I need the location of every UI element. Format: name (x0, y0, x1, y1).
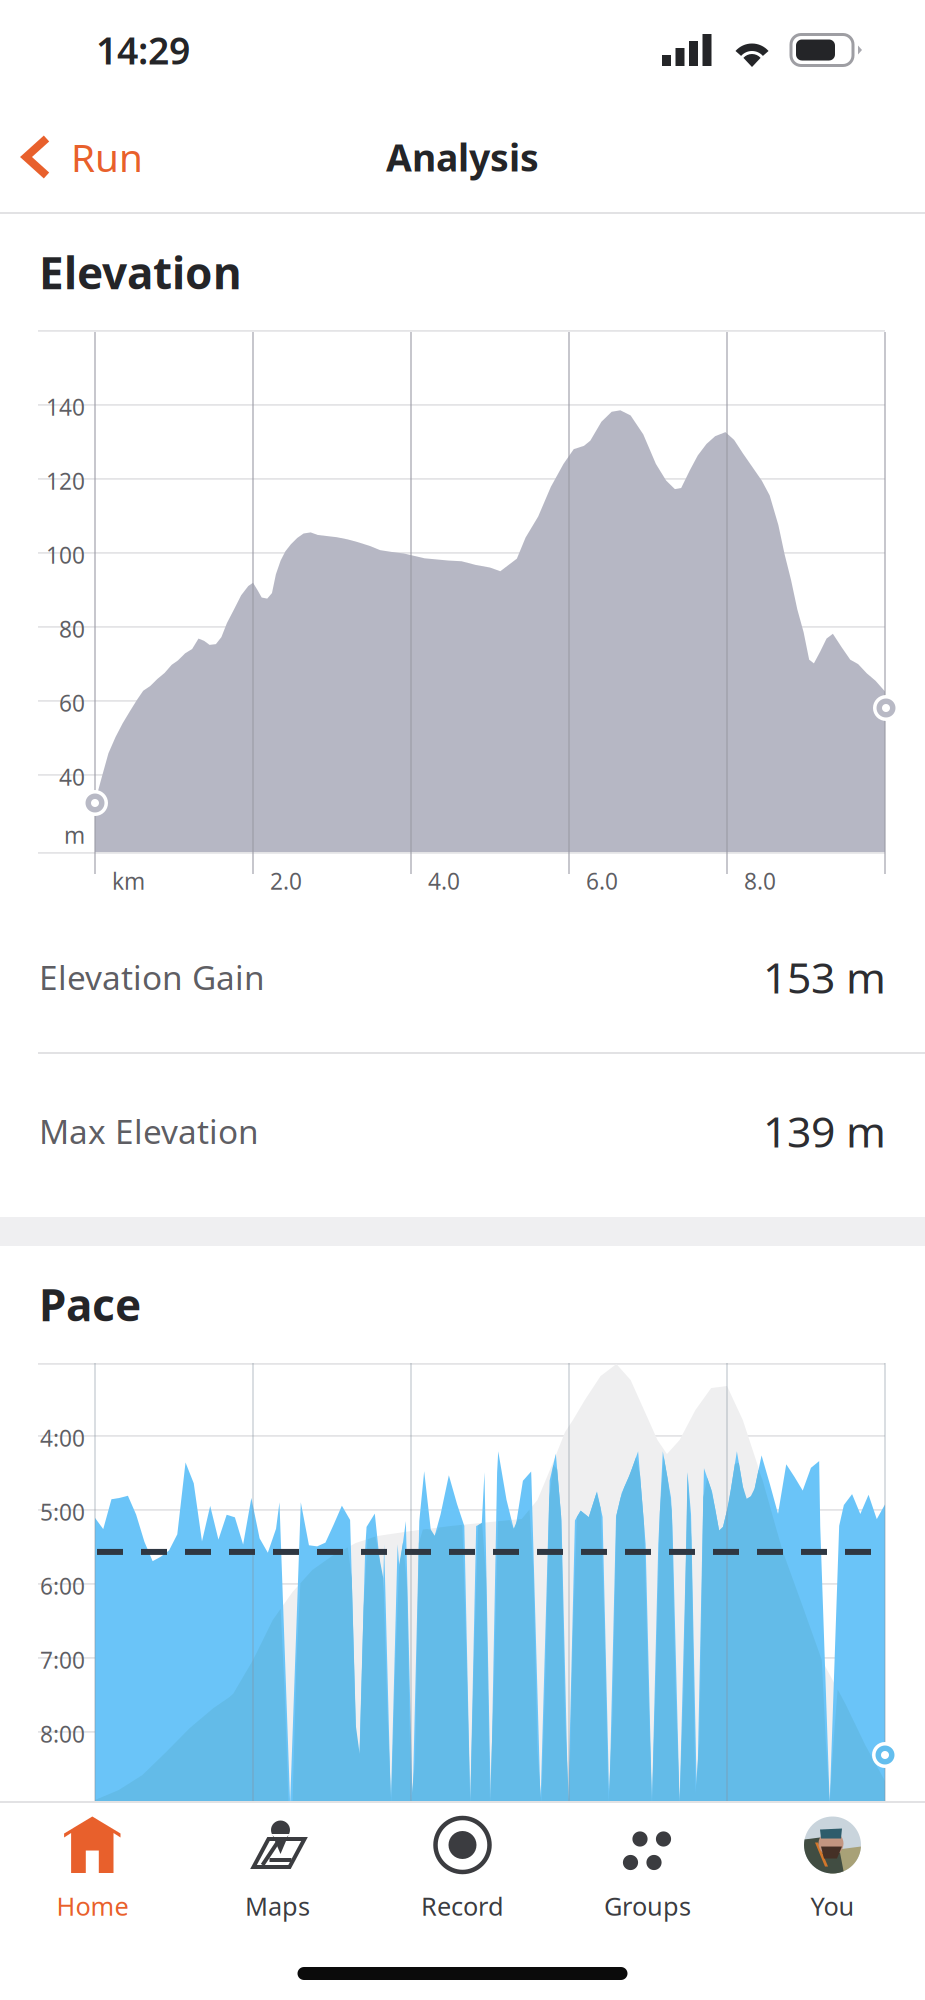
staticText: 6:00 (40, 1571, 85, 1601)
staticText: 8.0 (744, 866, 776, 896)
staticText: 153 m (763, 949, 886, 1005)
staticText: Max Elevation (39, 1109, 259, 1153)
button[interactable]: Elevation Gain (0, 913, 925, 1041)
staticText: Pace (39, 1275, 141, 1333)
staticText: Groups (604, 1889, 691, 1923)
staticText: Elevation Gain (39, 955, 265, 999)
staticText: 7:00 (40, 1645, 85, 1675)
staticText: Record (421, 1889, 504, 1923)
staticText: Run (71, 131, 143, 183)
button[interactable]: Max Elevation (0, 1067, 925, 1195)
staticText: 14:29 (96, 25, 190, 75)
staticText: 139 m (763, 1103, 886, 1159)
staticText: 120 (46, 466, 85, 496)
staticText: 100 (46, 540, 85, 570)
staticText: Home (56, 1889, 128, 1923)
staticText: m (64, 820, 85, 850)
button[interactable]: Run (0, 115, 163, 199)
staticText: 8:00 (40, 1719, 85, 1749)
staticText: 4:00 (40, 1423, 85, 1453)
staticText: Elevation (39, 243, 242, 301)
button[interactable]: Maps (185, 1816, 370, 1923)
staticText: 80 (59, 614, 85, 644)
staticText: 2.0 (270, 866, 302, 896)
button[interactable]: Record (370, 1816, 555, 1923)
staticText: You (810, 1889, 854, 1923)
staticText: 60 (59, 688, 85, 718)
staticText: Analysis (386, 132, 539, 182)
button[interactable]: You (740, 1816, 925, 1923)
staticText: 6.0 (586, 866, 618, 896)
staticText: 4.0 (428, 866, 460, 896)
staticText: Maps (245, 1889, 310, 1923)
button[interactable]: Groups (555, 1816, 740, 1923)
staticText: 140 (46, 392, 85, 422)
staticText: 5:00 (40, 1497, 85, 1527)
staticText: 40 (59, 762, 85, 792)
button[interactable]: Home (0, 1816, 185, 1923)
staticText: km (112, 866, 145, 896)
